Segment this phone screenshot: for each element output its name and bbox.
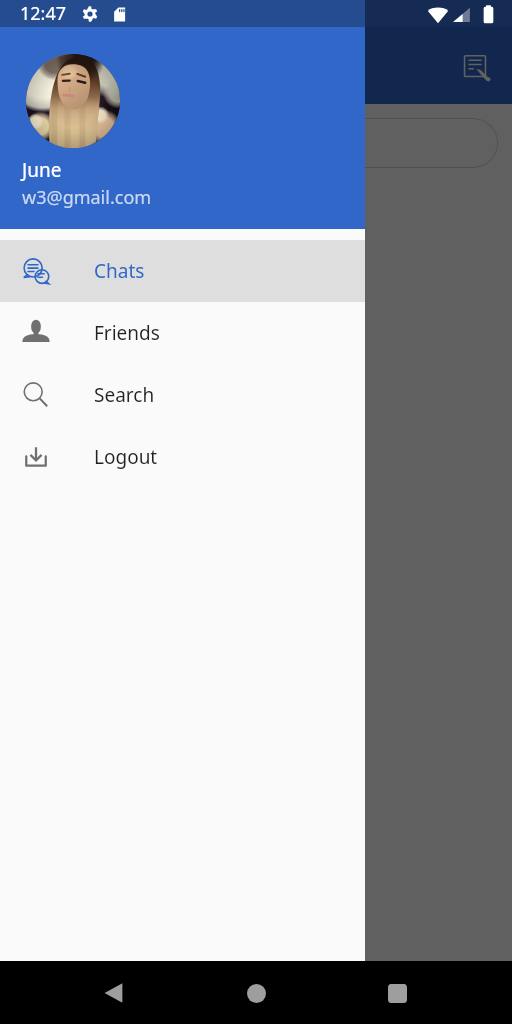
staticText: Friends bbox=[94, 320, 160, 346]
staticText: June bbox=[22, 157, 62, 183]
button[interactable]: Recent apps bbox=[373, 969, 421, 1017]
button[interactable]: Chats bbox=[0, 240, 365, 302]
button[interactable]: Search bbox=[16, 118, 498, 168]
staticText: Search bbox=[94, 382, 155, 408]
staticText: Logout bbox=[94, 444, 158, 470]
button[interactable]: Search bbox=[0, 364, 365, 426]
button[interactable]: Home bbox=[232, 969, 280, 1017]
button[interactable]: Compose bbox=[454, 42, 502, 90]
button[interactable]: Back bbox=[90, 969, 138, 1017]
staticText: w3@gmail.com bbox=[22, 185, 152, 210]
staticText: 12:47 bbox=[20, 1, 67, 26]
staticText: Chats bbox=[94, 258, 145, 284]
button[interactable]: Friends bbox=[0, 302, 365, 364]
button[interactable]: Logout bbox=[0, 426, 365, 488]
